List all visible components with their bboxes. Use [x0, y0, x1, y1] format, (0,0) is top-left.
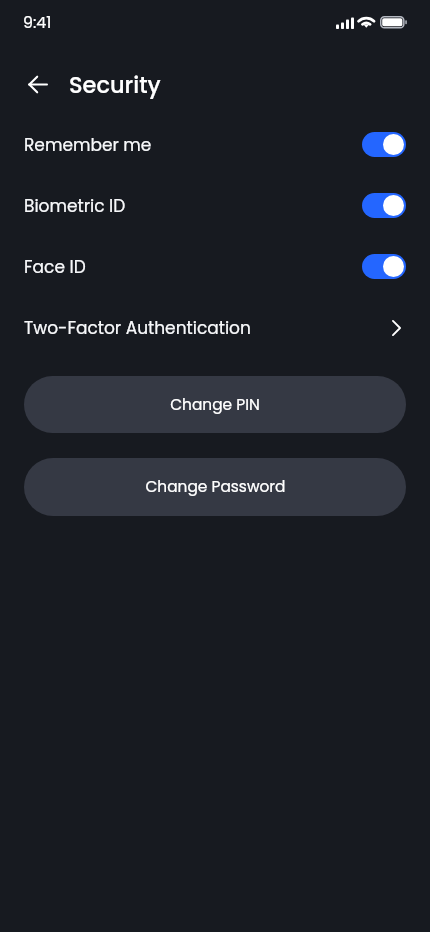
button[interactable]: Remember me	[0, 114, 430, 175]
button[interactable]: Two-Factor Authentication	[0, 297, 430, 358]
button[interactable]: Biometric ID toggle	[362, 193, 406, 218]
button[interactable]: Remember me toggle	[362, 132, 406, 157]
button[interactable]: Face ID toggle	[362, 254, 406, 279]
button[interactable]: Change Password	[24, 458, 406, 516]
staticText: Change Password	[145, 476, 286, 498]
button[interactable]: Change PIN	[24, 376, 406, 433]
staticText: Face ID	[24, 255, 362, 279]
staticText: 9:41	[23, 11, 52, 33]
staticText: Remember me	[24, 133, 362, 157]
staticText: Biometric ID	[24, 194, 362, 218]
button[interactable]: Face ID	[0, 236, 430, 297]
staticText: Change PIN	[170, 394, 260, 416]
staticText: Security	[69, 69, 161, 100]
staticText: Two-Factor Authentication	[24, 316, 397, 340]
button[interactable]: Back	[18, 64, 58, 104]
button[interactable]: Biometric ID	[0, 175, 430, 236]
